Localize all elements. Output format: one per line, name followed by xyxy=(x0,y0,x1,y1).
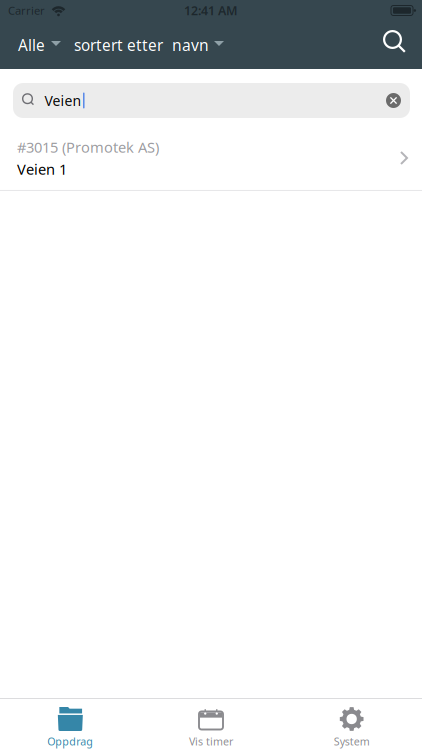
button[interactable]: Oppdrag xyxy=(0,699,141,750)
button[interactable]: navn xyxy=(172,34,224,56)
staticText: Oppdrag xyxy=(47,734,93,748)
button[interactable]: Alle xyxy=(18,35,61,55)
button[interactable]: System xyxy=(281,699,422,750)
button[interactable]: Search xyxy=(383,30,422,60)
staticText: System xyxy=(334,734,370,748)
staticText: navn xyxy=(172,34,209,56)
staticText: Carrier xyxy=(8,3,45,18)
button[interactable]: Vis timer xyxy=(141,699,281,750)
staticText: sortert etter xyxy=(74,35,163,55)
button[interactable]: Veien xyxy=(13,83,410,118)
staticText: Vis timer xyxy=(189,734,233,748)
staticText: Veien 1 xyxy=(17,159,67,179)
staticText: Veien xyxy=(45,91,82,110)
staticText: Alle xyxy=(18,35,45,55)
staticText: #3015 (Promotek AS) xyxy=(17,137,159,157)
staticText: 12:41 AM xyxy=(184,2,238,19)
button[interactable]: #3015 (Promotek AS) xyxy=(0,131,422,191)
